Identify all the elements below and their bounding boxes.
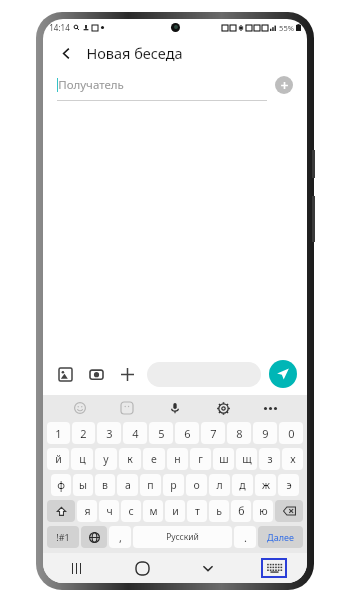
button[interactable]: ф bbox=[51, 474, 71, 496]
button[interactable]: Emoji bbox=[69, 397, 91, 419]
staticText: Получатель bbox=[58, 77, 124, 93]
button[interactable]: Hide keyboard bbox=[175, 553, 241, 583]
button[interactable]: Camera bbox=[84, 362, 108, 386]
staticText: ю bbox=[259, 504, 268, 518]
staticText: г bbox=[198, 452, 203, 466]
staticText: ф bbox=[57, 478, 65, 492]
button[interactable]: д bbox=[232, 474, 253, 496]
staticText: к bbox=[127, 452, 133, 466]
button[interactable]: м bbox=[143, 500, 163, 522]
button[interactable]: 0 bbox=[279, 422, 303, 444]
staticText: в bbox=[102, 478, 108, 492]
button[interactable]: к bbox=[119, 448, 141, 470]
button[interactable]: 9 bbox=[253, 422, 277, 444]
button[interactable]: ч bbox=[99, 500, 119, 522]
staticText: 0 bbox=[288, 426, 295, 441]
button[interactable]: я bbox=[77, 500, 97, 522]
button[interactable]: Send bbox=[269, 360, 297, 388]
button[interactable]: ю bbox=[253, 500, 273, 522]
staticText: з bbox=[267, 452, 273, 466]
button[interactable]: 2 bbox=[72, 422, 95, 444]
button[interactable]: з bbox=[259, 448, 280, 470]
button[interactable]: 5 bbox=[149, 422, 173, 444]
staticText: и bbox=[172, 504, 179, 518]
staticText: ь bbox=[216, 504, 222, 518]
button[interactable]: п bbox=[140, 474, 161, 496]
button[interactable]: ь bbox=[209, 500, 229, 522]
staticText: а bbox=[125, 478, 131, 492]
staticText: ш bbox=[219, 452, 229, 466]
button[interactable]: More options bbox=[115, 362, 139, 386]
button[interactable]: ц bbox=[71, 448, 93, 470]
staticText: 14:14 bbox=[49, 22, 70, 33]
button[interactable]: Recents bbox=[43, 553, 109, 583]
button[interactable]: !#1 bbox=[47, 526, 79, 548]
staticText: 9 bbox=[262, 426, 269, 441]
button[interactable]: Keyboard bbox=[241, 553, 307, 583]
button[interactable]: Backspace bbox=[275, 500, 303, 522]
button[interactable]: 7 bbox=[201, 422, 225, 444]
button[interactable]: у bbox=[95, 448, 117, 470]
staticText: л bbox=[216, 478, 223, 492]
staticText: Далее bbox=[267, 531, 294, 543]
staticText: 8 bbox=[236, 426, 243, 441]
button[interactable]: Shift bbox=[47, 500, 75, 522]
button[interactable]: . bbox=[234, 526, 256, 548]
button[interactable]: т bbox=[187, 500, 207, 522]
button[interactable]: Add recipient bbox=[275, 76, 293, 94]
button[interactable]: Gallery bbox=[53, 362, 77, 386]
button[interactable]: н bbox=[167, 448, 188, 470]
button[interactable]: , bbox=[109, 526, 131, 548]
staticText: н bbox=[174, 452, 181, 466]
button[interactable]: э bbox=[278, 474, 299, 496]
staticText: х bbox=[290, 452, 296, 466]
button[interactable]: 3 bbox=[97, 422, 121, 444]
staticText: я bbox=[84, 504, 91, 518]
button[interactable]: Далее bbox=[258, 526, 303, 548]
staticText: е bbox=[151, 452, 157, 466]
button[interactable]: Change language bbox=[81, 526, 107, 548]
staticText: ч bbox=[106, 504, 113, 518]
staticText: о bbox=[193, 478, 200, 492]
staticText: 55% bbox=[279, 23, 294, 33]
button[interactable]: с bbox=[121, 500, 141, 522]
button[interactable] bbox=[147, 362, 261, 387]
button[interactable]: г bbox=[190, 448, 211, 470]
button[interactable]: Русский bbox=[133, 526, 232, 548]
button[interactable]: Keyboard settings bbox=[212, 397, 234, 419]
button[interactable]: Back bbox=[55, 42, 77, 64]
button[interactable]: х bbox=[282, 448, 303, 470]
button[interactable]: 6 bbox=[175, 422, 199, 444]
staticText: п bbox=[147, 478, 154, 492]
button[interactable]: Stickers bbox=[116, 397, 138, 419]
staticText: й bbox=[55, 452, 62, 466]
button[interactable]: а bbox=[117, 474, 138, 496]
button[interactable]: Voice input bbox=[164, 397, 186, 419]
button[interactable]: о bbox=[186, 474, 207, 496]
staticText: 2 bbox=[80, 426, 87, 441]
button[interactable]: й bbox=[47, 448, 69, 470]
staticText: с bbox=[128, 504, 134, 518]
button[interactable]: ж bbox=[255, 474, 276, 496]
button[interactable]: ш bbox=[213, 448, 234, 470]
button[interactable]: щ bbox=[236, 448, 257, 470]
button[interactable]: 8 bbox=[227, 422, 251, 444]
staticText: 5 bbox=[158, 426, 165, 441]
staticText: ц bbox=[79, 452, 86, 466]
button[interactable]: в bbox=[95, 474, 115, 496]
button[interactable]: б bbox=[231, 500, 251, 522]
button[interactable]: е bbox=[143, 448, 165, 470]
staticText: м bbox=[149, 504, 158, 518]
button[interactable]: 4 bbox=[123, 422, 147, 444]
button[interactable]: ы bbox=[73, 474, 93, 496]
button[interactable]: и bbox=[165, 500, 185, 522]
staticText: т bbox=[195, 504, 200, 518]
staticText: щ bbox=[242, 452, 252, 466]
button[interactable]: 1 bbox=[47, 422, 70, 444]
staticText: . bbox=[244, 530, 247, 545]
button[interactable]: Home bbox=[109, 553, 175, 583]
button[interactable]: р bbox=[163, 474, 184, 496]
staticText: 3 bbox=[106, 426, 113, 441]
button[interactable]: More bbox=[259, 397, 281, 419]
button[interactable]: л bbox=[209, 474, 230, 496]
